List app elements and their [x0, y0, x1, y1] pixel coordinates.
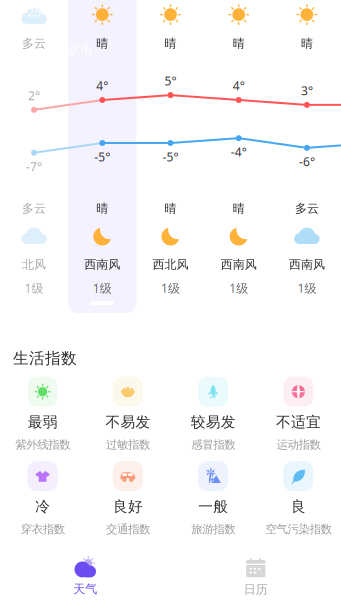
staticText: 运动指数 — [276, 437, 320, 452]
staticText: 多云 — [295, 201, 319, 216]
button[interactable]: 良 — [256, 461, 341, 535]
staticText: 过敏指数 — [106, 437, 150, 452]
staticText: 4° — [96, 77, 108, 94]
button[interactable]: 一般 — [170, 461, 256, 535]
staticText: 西南风 — [221, 257, 257, 272]
staticText: 晴 — [301, 36, 313, 51]
staticText: -4° — [231, 144, 247, 160]
staticText: 晴 — [233, 201, 245, 216]
staticText: 4° — [233, 77, 245, 94]
staticText: 多云 — [22, 201, 46, 216]
staticText: 晴 — [164, 36, 176, 51]
button[interactable]: 最弱 — [0, 377, 85, 451]
staticText: 不易发 — [105, 413, 150, 431]
staticText: -6° — [299, 153, 315, 170]
staticText: 西北风 — [152, 257, 188, 272]
staticText: 天气 — [73, 581, 97, 596]
staticText: -5° — [94, 149, 110, 165]
staticText: 西南风 — [289, 257, 325, 272]
button[interactable]: 不适宜 — [256, 377, 341, 451]
staticText: 1级 — [229, 280, 248, 296]
staticText: 良好 — [113, 497, 143, 516]
staticText: 多云 — [22, 36, 46, 51]
staticText: 晴 — [233, 36, 245, 51]
staticText: 日历 — [244, 582, 268, 597]
staticText: 不适宜 — [276, 413, 321, 431]
staticText: 晴 — [96, 36, 108, 51]
button[interactable]: 日历 — [170, 544, 341, 606]
button[interactable]: 冷 — [0, 461, 85, 535]
staticText: 5° — [164, 73, 176, 89]
button[interactable]: 天气 — [0, 544, 170, 606]
staticText: 感冒指数 — [191, 437, 235, 452]
staticText: 空气污染指数 — [265, 522, 331, 536]
staticText: 一般 — [198, 497, 228, 516]
staticText: 3° — [301, 82, 313, 99]
staticText: 2° — [28, 87, 40, 104]
staticText: 紫外线指数 — [15, 437, 70, 452]
staticText: 京市 — [67, 42, 93, 59]
staticText: 晴 — [164, 201, 176, 216]
button[interactable]: 良好 — [85, 461, 170, 535]
staticText: 生活指数 — [13, 348, 77, 368]
staticText: 旅游指数 — [191, 522, 235, 536]
staticText: 西南风 — [84, 257, 120, 272]
button[interactable]: 较易发 — [170, 377, 256, 451]
staticText: 穿衣指数 — [21, 522, 65, 536]
staticText: 晴 — [96, 201, 108, 216]
staticText: 25 — [27, 3, 41, 20]
staticText: 交通指数 — [106, 522, 150, 536]
staticText: 1级 — [161, 280, 180, 296]
staticText: 1级 — [25, 280, 44, 296]
staticText: 1级 — [93, 280, 112, 296]
staticText: 1级 — [297, 280, 316, 296]
button[interactable]: 不易发 — [85, 377, 170, 451]
staticText: 北风 — [22, 257, 46, 272]
staticText: 最弱 — [28, 413, 58, 431]
staticText: -7° — [26, 158, 42, 175]
staticText: 冷 — [35, 497, 50, 516]
staticText: 较易发 — [191, 413, 236, 431]
staticText: -5° — [162, 149, 178, 165]
staticText: 良 — [291, 497, 306, 516]
